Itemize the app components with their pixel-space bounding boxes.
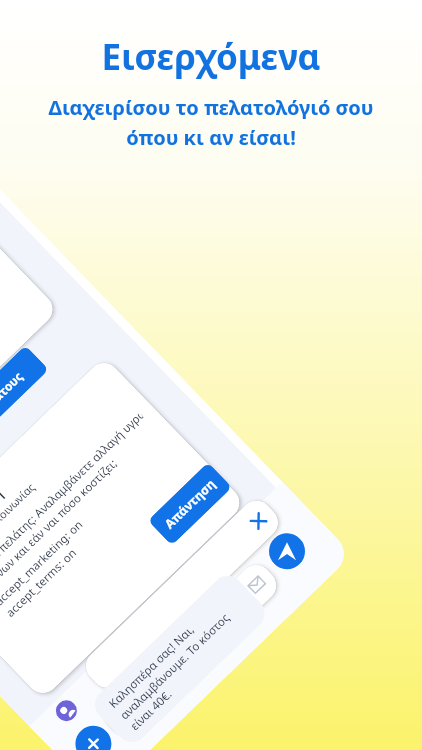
button[interactable]: Απάντηση: [147, 462, 232, 546]
button[interactable]: πελάτους: [0, 345, 49, 442]
button[interactable]: Close: [79, 494, 285, 694]
staticText: Σχόλια πελάτης: Αναλαμβάνετε αλλαγή υγρώ…: [0, 409, 146, 583]
staticText: Διαχειρίσου το πελατολόγιό σου όπου κι α…: [48, 94, 374, 151]
button[interactable]: Messages: [97, 558, 283, 740]
staticText: accept_marketing: on: [0, 516, 87, 609]
staticText: πελάτους: [0, 368, 26, 419]
staticText: Τρόπος επικοινωνίας: [0, 479, 38, 565]
button[interactable]: Add: [68, 718, 119, 750]
staticText: Νέος πελάτη: [0, 485, 7, 554]
staticText: Απάντηση: [161, 475, 220, 532]
staticText: φρένων και εάν ναι πόσο κοστίζει;: [0, 455, 121, 595]
staticText: accept_terms: on: [2, 545, 80, 621]
button[interactable]: Send: [262, 526, 312, 577]
staticText: Εισερχόμενα: [101, 33, 321, 81]
staticText: Καλησπέρα σας! Ναι, αναλαμβάνουμε. Το κό…: [105, 598, 243, 733]
